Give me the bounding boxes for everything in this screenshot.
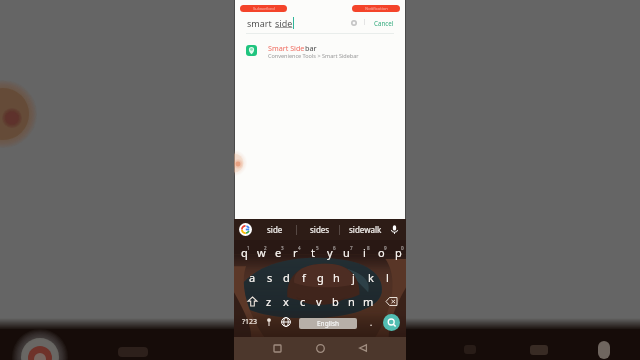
button[interactable]: English	[299, 318, 357, 329]
staticText: 0	[401, 245, 404, 251]
staticText: sidewalk	[349, 224, 382, 235]
button[interactable]: g	[312, 265, 329, 289]
staticText: b	[332, 294, 339, 309]
staticText: x	[283, 294, 289, 309]
staticText: y	[327, 245, 333, 260]
staticText: smart	[247, 17, 275, 29]
button[interactable]: p	[390, 240, 406, 264]
staticText: g	[317, 270, 324, 285]
button[interactable]: k	[362, 265, 379, 289]
staticText: 2	[264, 245, 267, 251]
staticText: 1	[247, 245, 250, 251]
button[interactable]: Home	[311, 339, 329, 357]
button[interactable]: Clear query	[348, 17, 360, 29]
button[interactable]: Smart Side	[234, 40, 406, 64]
staticText: l	[386, 270, 389, 285]
staticText: r	[293, 245, 298, 260]
staticText: 8	[367, 245, 370, 251]
button[interactable]: o	[373, 240, 390, 264]
button[interactable]: Voice input	[389, 224, 400, 235]
button[interactable]: f	[295, 265, 312, 289]
button[interactable]: Switch language	[279, 314, 292, 330]
staticText: English	[317, 319, 340, 328]
button[interactable]: x	[277, 289, 294, 313]
button[interactable]: l	[379, 265, 396, 289]
staticText: w	[257, 245, 266, 260]
staticText: 3	[281, 245, 284, 251]
button[interactable]: n	[343, 289, 360, 313]
button[interactable]: m	[360, 289, 377, 313]
staticText: Subscribed	[253, 6, 275, 12]
button[interactable]: Shift	[243, 292, 261, 310]
staticText: 9	[384, 245, 387, 251]
staticText: side	[267, 224, 283, 235]
button[interactable]: Google	[239, 223, 252, 236]
staticText: q	[241, 245, 248, 260]
button[interactable]: Back	[354, 339, 372, 357]
staticText: sides	[310, 224, 330, 235]
button[interactable]: sidewalk	[344, 219, 386, 240]
staticText: side	[275, 17, 293, 29]
staticText: k	[368, 270, 374, 285]
staticText: n	[348, 294, 355, 309]
button[interactable]: Backspace	[382, 292, 400, 310]
staticText: z	[266, 294, 272, 309]
button[interactable]: s	[261, 265, 278, 289]
button[interactable]: t	[304, 240, 321, 264]
staticText: e	[275, 245, 282, 260]
button[interactable]: ?123	[240, 314, 259, 330]
staticText: Smart Side	[268, 43, 305, 53]
button[interactable]: q	[236, 240, 253, 264]
button[interactable]: u	[338, 240, 355, 264]
staticText: j	[352, 270, 355, 285]
staticText: 6	[333, 245, 336, 251]
staticText: t	[311, 245, 315, 260]
staticText: v	[316, 294, 322, 309]
staticText: Notification	[365, 6, 388, 12]
staticText: m	[363, 294, 374, 309]
staticText: 4	[298, 245, 301, 251]
button[interactable]: z	[260, 289, 277, 313]
button[interactable]: r	[287, 240, 304, 264]
staticText: s	[267, 270, 273, 285]
button[interactable]: b	[327, 289, 344, 313]
staticText: o	[378, 245, 385, 260]
button[interactable]: side	[254, 219, 296, 240]
staticText: f	[302, 270, 306, 285]
button[interactable]: sides	[299, 219, 341, 240]
staticText: 7	[350, 245, 353, 251]
button[interactable]: h	[328, 265, 345, 289]
button[interactable]: a	[244, 265, 261, 289]
staticText: p	[395, 245, 402, 260]
staticText: h	[333, 270, 340, 285]
button[interactable]: v	[310, 289, 327, 313]
button[interactable]: c	[294, 289, 311, 313]
staticText: .	[370, 317, 373, 328]
staticText: u	[343, 245, 350, 260]
button[interactable]: Cancel	[370, 18, 398, 28]
staticText: Cancel	[374, 19, 394, 27]
button[interactable]: y	[321, 240, 338, 264]
button[interactable]: Search	[383, 314, 400, 331]
staticText: a	[249, 270, 256, 285]
staticText: 5	[316, 245, 319, 251]
button[interactable]: j	[345, 265, 362, 289]
button[interactable]: i	[356, 240, 373, 264]
staticText: i	[363, 245, 366, 260]
staticText: bar	[305, 43, 317, 53]
staticText: ?123	[242, 317, 258, 327]
button[interactable]: d	[278, 265, 295, 289]
staticText: Convenience Tools > Smart Sidebar	[268, 52, 359, 59]
button[interactable]: .	[365, 314, 378, 330]
button[interactable]: Recents	[268, 339, 286, 357]
button[interactable]: w	[253, 240, 270, 264]
staticText: c	[300, 294, 306, 309]
button[interactable]: e	[270, 240, 287, 264]
button[interactable]: Emoji	[262, 314, 275, 330]
staticText: d	[283, 270, 290, 285]
